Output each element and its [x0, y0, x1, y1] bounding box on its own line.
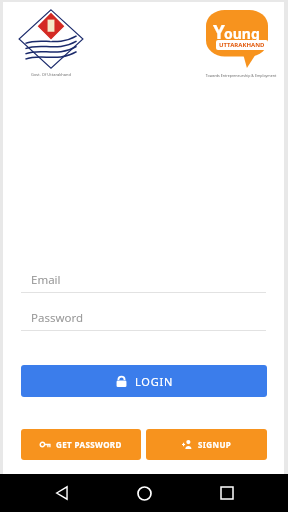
button[interactable]: Recent apps	[206, 474, 248, 512]
button[interactable]: SIGNUP	[146, 429, 267, 460]
button[interactable]: Home	[123, 474, 165, 512]
button[interactable]: Password	[21, 306, 266, 331]
staticText: SIGNUP	[198, 439, 232, 450]
button[interactable]: Back	[41, 474, 83, 512]
button[interactable]: GET PASSWORD	[21, 429, 141, 460]
staticText: Password	[31, 310, 84, 326]
staticText: UTTARAKHAND	[219, 41, 265, 49]
staticText: Email	[31, 272, 61, 288]
staticText: Y	[213, 19, 225, 45]
staticText: oung	[224, 24, 260, 43]
button[interactable]: LOGIN	[21, 365, 267, 397]
staticText: GET PASSWORD	[56, 439, 122, 450]
staticText: Govt. Of Uttarakhand	[14, 72, 88, 77]
button[interactable]: Email	[21, 268, 266, 293]
staticText: Towards Entrepreneurship & Employment	[199, 73, 283, 78]
staticText: LOGIN	[135, 374, 174, 389]
